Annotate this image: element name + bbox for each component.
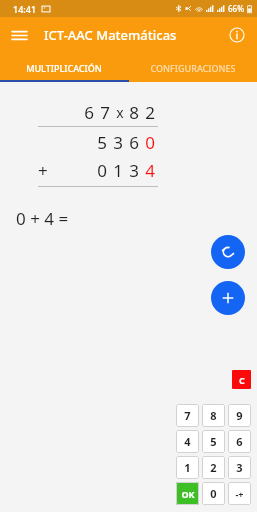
staticText: 5 <box>97 131 107 154</box>
button[interactable]: Open navigation menu <box>5 21 33 49</box>
button[interactable]: 7 <box>176 404 199 427</box>
staticText: ICT-AAC Matemáticas <box>44 26 177 44</box>
staticText: 4 <box>145 159 155 182</box>
staticText: + <box>38 159 48 182</box>
button[interactable]: Information <box>223 21 251 49</box>
staticText: 1 <box>113 159 123 182</box>
button[interactable]: Refresh <box>211 235 245 269</box>
staticText: 0 <box>97 159 107 182</box>
staticText: 0 <box>210 486 217 501</box>
button[interactable]: CONFIGURACIONES <box>128 53 257 82</box>
staticText: 66% <box>228 3 244 14</box>
button[interactable]: -+ <box>228 482 251 505</box>
button[interactable]: 5 <box>202 430 225 453</box>
staticText: 3 <box>113 131 123 154</box>
staticText: 14:41 <box>13 3 37 15</box>
staticText: C <box>239 374 245 386</box>
staticText: 0 + 4 = <box>16 207 69 230</box>
staticText: 6 <box>84 101 94 124</box>
staticText: 2 <box>145 101 155 124</box>
staticText: 8 <box>210 408 217 423</box>
button[interactable]: 9 <box>228 404 251 427</box>
staticText: 3 <box>129 159 139 182</box>
staticText: 8 <box>129 101 139 124</box>
staticText: 7 <box>184 408 191 423</box>
staticText: CONFIGURACIONES <box>150 62 236 74</box>
staticText: 2 <box>210 460 217 475</box>
staticText: MULTIPLICACIÓN <box>26 62 102 74</box>
staticText: x <box>116 103 124 122</box>
button[interactable]: MULTIPLICACIÓN <box>0 53 128 82</box>
button[interactable]: C <box>232 370 251 389</box>
staticText: -+ <box>235 488 244 500</box>
staticText: 3 <box>236 460 243 475</box>
button[interactable]: 1 <box>176 456 199 479</box>
button[interactable]: 3 <box>228 456 251 479</box>
button[interactable]: 0 <box>202 482 225 505</box>
staticText: 9 <box>236 408 243 423</box>
staticText: 7 <box>100 101 110 124</box>
staticText: 1 <box>184 460 191 475</box>
staticText: 6 <box>236 434 243 449</box>
button[interactable]: 2 <box>202 456 225 479</box>
button[interactable]: 6 <box>228 430 251 453</box>
staticText: 0 <box>145 131 155 154</box>
staticText: 6 <box>129 131 139 154</box>
button[interactable]: OK <box>176 482 199 505</box>
button[interactable]: Add <box>211 281 245 315</box>
button[interactable]: 8 <box>202 404 225 427</box>
button[interactable]: 4 <box>176 430 199 453</box>
staticText: 4 <box>184 434 191 449</box>
staticText: OK <box>181 488 195 500</box>
staticText: 5 <box>210 434 217 449</box>
